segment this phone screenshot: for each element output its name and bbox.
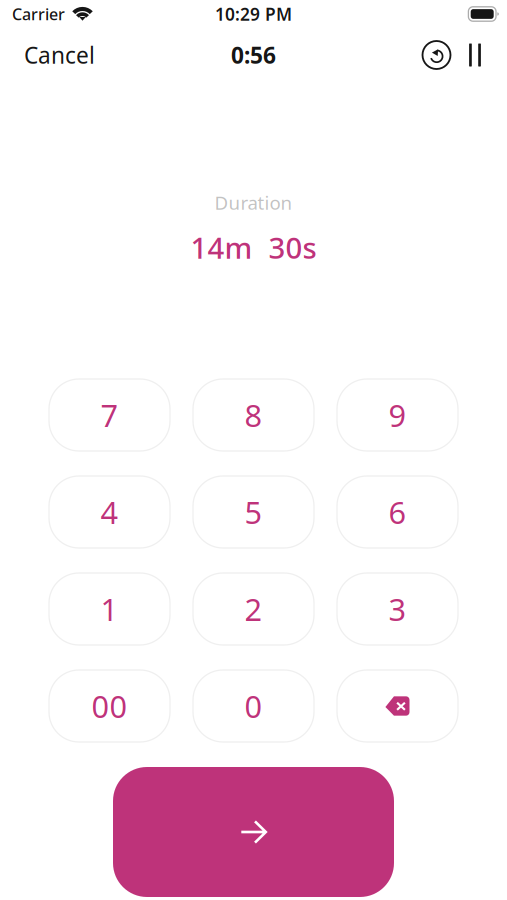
button[interactable]: 2 — [193, 573, 314, 645]
staticText: 0:56 — [231, 40, 276, 70]
button[interactable]: 7 — [49, 379, 170, 451]
button[interactable]: Continue — [113, 767, 394, 897]
staticText: 5 — [244, 492, 262, 532]
button[interactable]: 8 — [193, 379, 314, 451]
staticText: Carrier — [12, 3, 65, 25]
staticText: 9 — [388, 395, 406, 435]
staticText: 6 — [388, 492, 406, 532]
button[interactable]: 1 — [49, 573, 170, 645]
button[interactable]: Cancel — [0, 31, 107, 79]
button[interactable]: 0 — [193, 670, 314, 742]
staticText: 8 — [244, 395, 262, 435]
staticText: Cancel — [24, 40, 95, 70]
staticText: 3 — [388, 589, 406, 629]
button[interactable]: 3 — [337, 573, 458, 645]
staticText: 4 — [100, 492, 118, 532]
button[interactable]: 4 — [49, 476, 170, 548]
staticText: 00 — [91, 686, 127, 726]
button[interactable]: 00 — [49, 670, 170, 742]
staticText: 1 — [100, 589, 118, 629]
staticText: 2 — [244, 589, 262, 629]
staticText: 0 — [244, 686, 262, 726]
button[interactable]: 6 — [337, 476, 458, 548]
button[interactable]: 5 — [193, 476, 314, 548]
button[interactable]: 9 — [337, 379, 458, 451]
button[interactable]: Delete — [337, 670, 458, 742]
button[interactable]: Pause — [465, 37, 507, 72]
staticText: Duration — [214, 190, 292, 215]
staticText: 14m 30s — [190, 228, 316, 267]
staticText: 10:29 PM — [215, 2, 292, 25]
button[interactable]: Restart — [418, 37, 454, 73]
staticText: 7 — [100, 395, 118, 435]
